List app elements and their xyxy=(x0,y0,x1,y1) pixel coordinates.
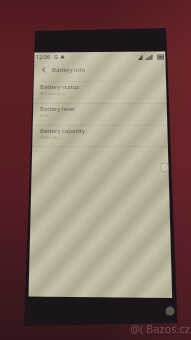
staticText: 85 % xyxy=(40,113,49,118)
button[interactable]: Back xyxy=(30,62,171,81)
staticText: 3200 mAh xyxy=(40,135,59,140)
staticText: @( Bazos.cz xyxy=(130,321,190,336)
staticText: Battery status xyxy=(40,83,80,91)
staticText: Battery info xyxy=(52,66,86,74)
button[interactable]: Battery capacity xyxy=(30,126,171,146)
staticText: Not charging xyxy=(40,91,65,96)
button[interactable]: Assistant xyxy=(159,162,170,173)
staticText: Battery capacity xyxy=(40,127,86,135)
button[interactable]: Battery status xyxy=(30,82,171,103)
button[interactable]: Battery level xyxy=(30,104,171,125)
staticText: Battery level xyxy=(40,105,75,113)
staticText: G xyxy=(54,53,58,60)
button[interactable]: Back xyxy=(38,62,49,77)
staticText: 12:06 xyxy=(36,53,51,60)
